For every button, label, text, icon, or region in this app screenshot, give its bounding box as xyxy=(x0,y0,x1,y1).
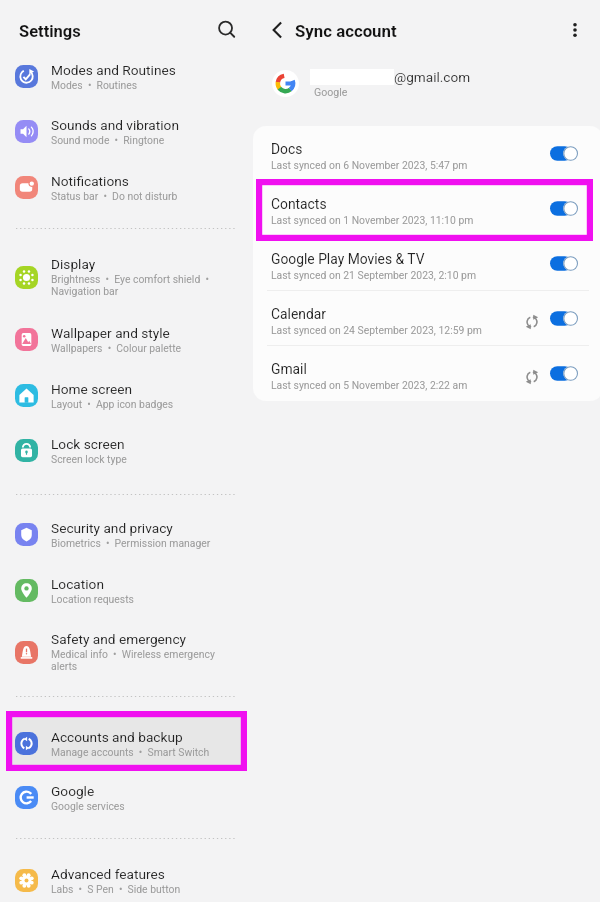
staticText: Docs xyxy=(271,141,303,157)
staticText: Lock screen xyxy=(51,436,125,452)
button[interactable]: Calendar xyxy=(253,291,600,346)
button[interactable]: Accounts and backup xyxy=(0,718,250,768)
staticText: Last synced on 21 September 2023, 2:10 p… xyxy=(271,269,477,281)
staticText: Modes • Routines xyxy=(51,79,138,91)
staticText: Location xyxy=(51,576,104,592)
staticText: Security and privacy xyxy=(51,520,173,536)
staticText: Labs • S Pen • Side button xyxy=(51,883,181,895)
button[interactable]: Toggle sync xyxy=(550,256,578,271)
button[interactable]: Lock screen xyxy=(0,425,250,475)
staticText: Layout • App icon badges xyxy=(51,398,174,410)
button[interactable]: Wallpaper and style xyxy=(0,314,250,364)
button[interactable]: Gmail xyxy=(253,346,600,401)
staticText: Gmail xyxy=(271,361,307,377)
button[interactable]: Toggle sync xyxy=(550,366,578,381)
staticText: Modes and Routines xyxy=(51,62,176,78)
staticText: Wallpaper and style xyxy=(51,325,170,341)
staticText: Status bar • Do not disturb xyxy=(51,190,178,202)
staticText: Last synced on 1 November 2023, 11:10 pm xyxy=(271,214,474,226)
staticText: Last synced on 6 November 2023, 5:47 pm xyxy=(271,159,468,171)
button[interactable]: Google Play Movies & TV xyxy=(253,236,600,291)
button[interactable]: Docs xyxy=(253,126,600,181)
staticText: Advanced features xyxy=(51,866,165,882)
staticText: Last synced on 24 September 2023, 12:59 … xyxy=(271,324,482,336)
button[interactable]: Advanced features xyxy=(0,855,250,902)
staticText: Accounts and backup xyxy=(51,729,183,745)
button[interactable]: Toggle sync xyxy=(550,146,578,161)
button[interactable]: @gmail.com xyxy=(250,62,600,104)
staticText: Location requests xyxy=(51,593,134,605)
button[interactable]: Back xyxy=(263,16,291,44)
button[interactable]: Safety and emergency xyxy=(0,623,250,681)
button[interactable]: Security and privacy xyxy=(0,509,250,559)
button[interactable]: Notifications xyxy=(0,162,250,212)
staticText: Sound mode • Ringtone xyxy=(51,134,165,146)
staticText: @gmail.com xyxy=(394,69,471,85)
staticText: Screen lock type xyxy=(51,453,127,465)
button[interactable]: Sounds and vibration xyxy=(0,106,250,156)
staticText: Display xyxy=(51,256,96,272)
button[interactable]: Search xyxy=(215,18,239,42)
staticText: Google xyxy=(51,783,95,799)
button[interactable]: Home screen xyxy=(0,370,250,420)
staticText: Home screen xyxy=(51,381,133,397)
staticText: Sync account xyxy=(295,21,397,41)
staticText: Brightness • Eye comfort shield • Naviga… xyxy=(51,273,209,298)
button[interactable]: Toggle sync xyxy=(550,311,578,326)
button[interactable]: Google xyxy=(0,772,250,822)
staticText: Safety and emergency xyxy=(51,631,187,647)
staticText: Calendar xyxy=(271,306,326,322)
staticText: Notifications xyxy=(51,173,129,189)
staticText: Google Play Movies & TV xyxy=(271,251,425,267)
staticText: Settings xyxy=(19,22,81,41)
button[interactable]: Display xyxy=(0,248,250,306)
staticText: Google xyxy=(314,86,348,98)
button[interactable]: Toggle sync xyxy=(550,201,578,216)
button[interactable]: Modes and Routines xyxy=(0,51,250,101)
button[interactable]: Location xyxy=(0,565,250,615)
staticText: Last synced on 5 November 2023, 2:22 am xyxy=(271,379,468,391)
staticText: Wallpapers • Colour palette xyxy=(51,342,182,354)
button[interactable]: Contacts xyxy=(253,181,600,236)
staticText: Contacts xyxy=(271,196,327,212)
staticText: Sounds and vibration xyxy=(51,117,179,133)
staticText: Manage accounts • Smart Switch xyxy=(51,746,210,758)
button[interactable]: More options xyxy=(563,18,587,42)
staticText: Google services xyxy=(51,800,125,812)
staticText: Biometrics • Permission manager xyxy=(51,537,211,549)
staticText: Medical info • Wireless emergency alerts xyxy=(51,648,215,673)
